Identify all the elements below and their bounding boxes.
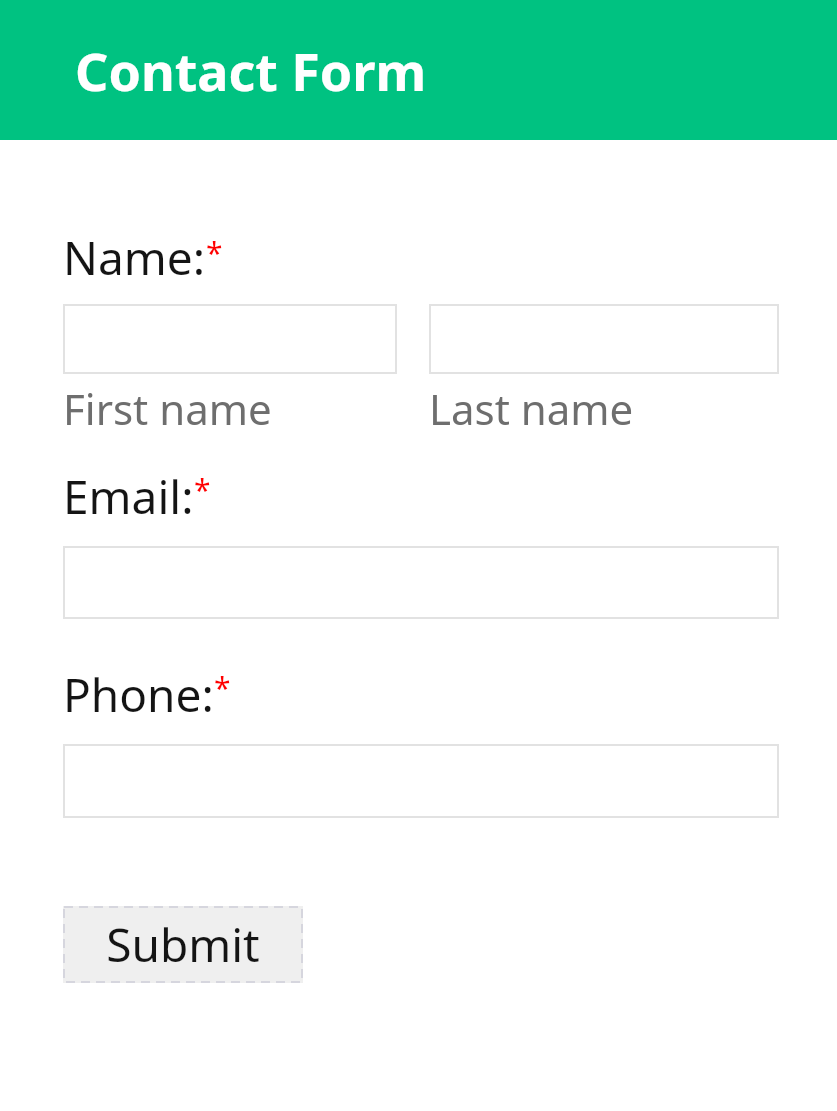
staticText: First name	[63, 380, 272, 437]
staticText: Email:	[63, 465, 194, 528]
staticText: Name:	[63, 226, 206, 289]
staticText: Last name	[429, 380, 634, 437]
button[interactable]: Last name	[429, 304, 779, 374]
staticText: *	[206, 232, 223, 273]
staticText: *	[214, 667, 231, 708]
staticText: Submit	[106, 913, 260, 976]
button[interactable]: Email	[63, 546, 779, 619]
button[interactable]: First name	[63, 304, 397, 374]
staticText: *	[194, 469, 211, 510]
staticText: Phone:	[63, 663, 214, 726]
button[interactable]: Submit	[63, 906, 303, 983]
button[interactable]: Phone	[63, 744, 779, 818]
staticText: Contact Form	[75, 35, 427, 106]
